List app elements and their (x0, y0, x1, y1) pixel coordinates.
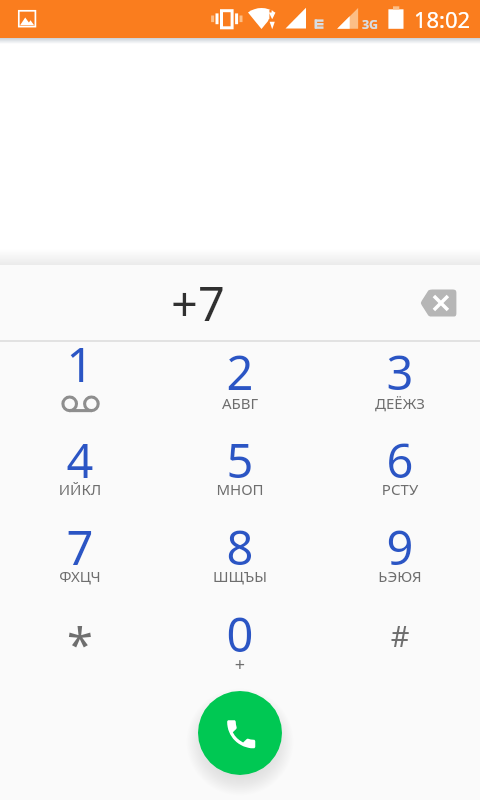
staticText: ЬЭЮЯ (320, 566, 480, 586)
staticText: ИЙКЛ (0, 479, 160, 499)
staticText: 2 (170, 340, 310, 404)
staticText: 0 (170, 602, 310, 666)
staticText: 3 (330, 340, 470, 404)
button[interactable] (165, 598, 315, 685)
button[interactable] (165, 336, 315, 423)
staticText: ДЕЁЖЗ (320, 393, 480, 413)
button[interactable] (325, 598, 475, 685)
staticText: 5 (170, 428, 310, 492)
staticText: 6 (330, 428, 470, 492)
button[interactable] (0, 265, 480, 340)
staticText: АБВГ (160, 393, 320, 413)
button[interactable] (325, 336, 475, 423)
button[interactable] (5, 336, 155, 423)
staticText: ФХЦЧ (0, 566, 160, 586)
staticText: 8 (170, 515, 310, 579)
staticText: # (340, 616, 460, 655)
staticText: ШЩЪЫ (160, 566, 320, 586)
staticText: * (20, 612, 140, 676)
staticText: + (200, 652, 280, 677)
staticText: 9 (330, 515, 470, 579)
staticText: 4 (10, 428, 150, 492)
button[interactable] (325, 510, 475, 597)
staticText: 1 (10, 332, 150, 396)
button[interactable] (5, 424, 155, 511)
button[interactable]: Call (198, 691, 282, 775)
staticText: РСТУ (320, 479, 480, 499)
staticText: 18:02 (382, 4, 480, 34)
staticText: 7 (10, 515, 150, 579)
staticText: +7 (48, 271, 348, 335)
button[interactable] (165, 510, 315, 597)
button[interactable] (325, 424, 475, 511)
button[interactable]: Backspace (406, 275, 472, 331)
staticText: 3G (340, 16, 400, 33)
button[interactable] (5, 598, 155, 685)
button[interactable] (5, 510, 155, 597)
staticText: МНОП (160, 479, 320, 499)
button[interactable] (165, 424, 315, 511)
